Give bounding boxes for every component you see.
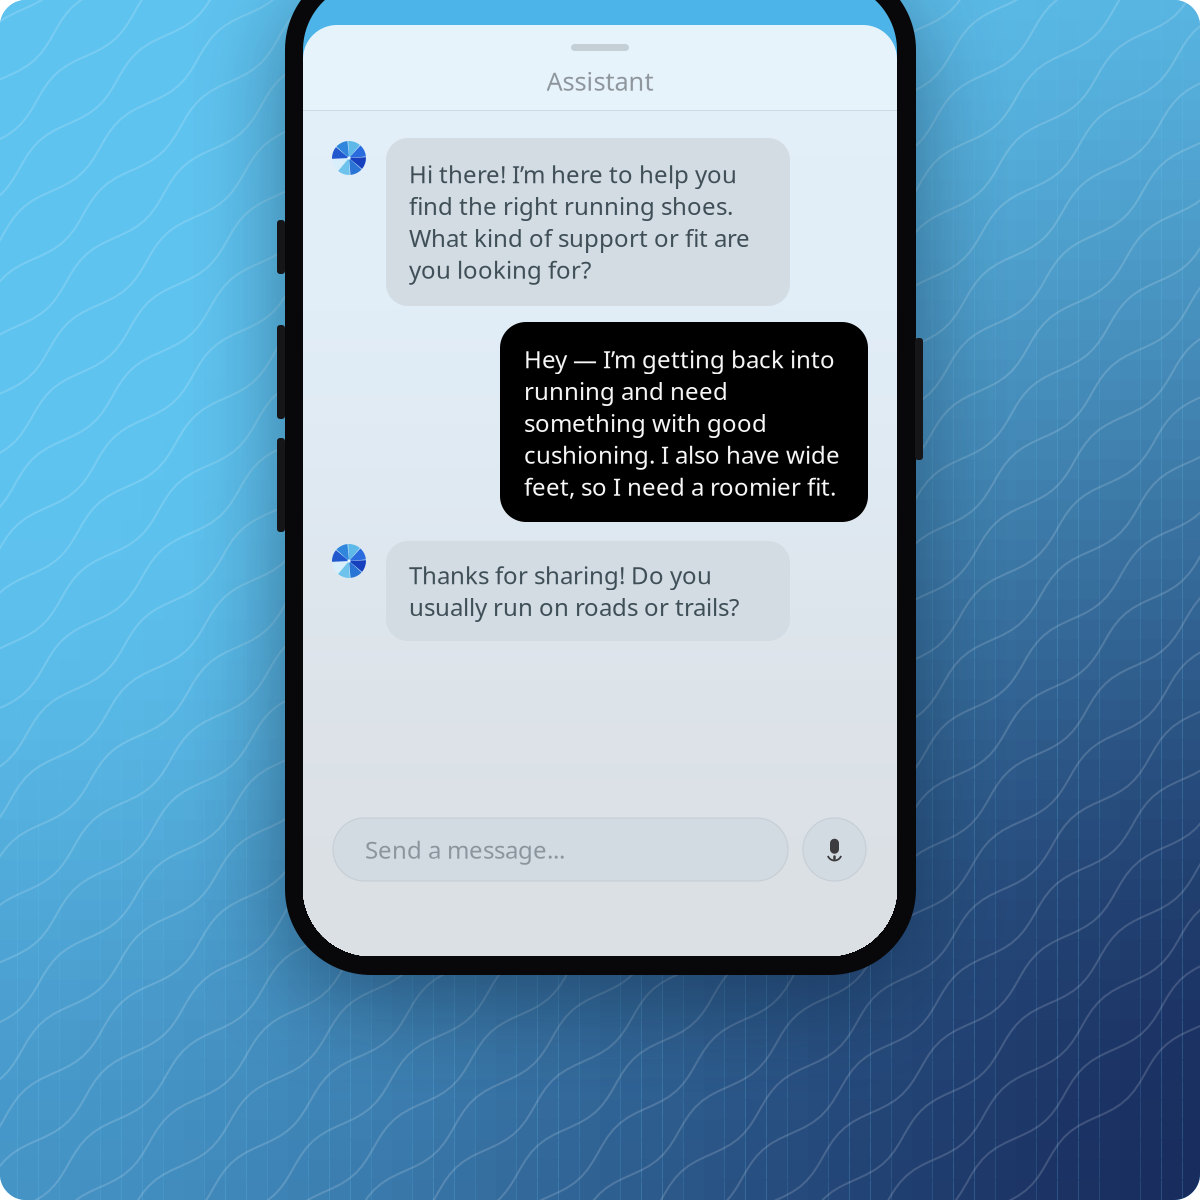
staticText: Send a message... [365,834,565,865]
button[interactable]: Send a message... [333,818,788,881]
staticText: Hi there! I’m here to help you find the … [409,158,750,285]
button[interactable]: Dictate [803,818,866,881]
staticText: Hey — I’m getting back into running and … [524,343,840,502]
staticText: Assistant [546,64,653,98]
staticText: Thanks for sharing! Do you usually run o… [409,559,739,623]
